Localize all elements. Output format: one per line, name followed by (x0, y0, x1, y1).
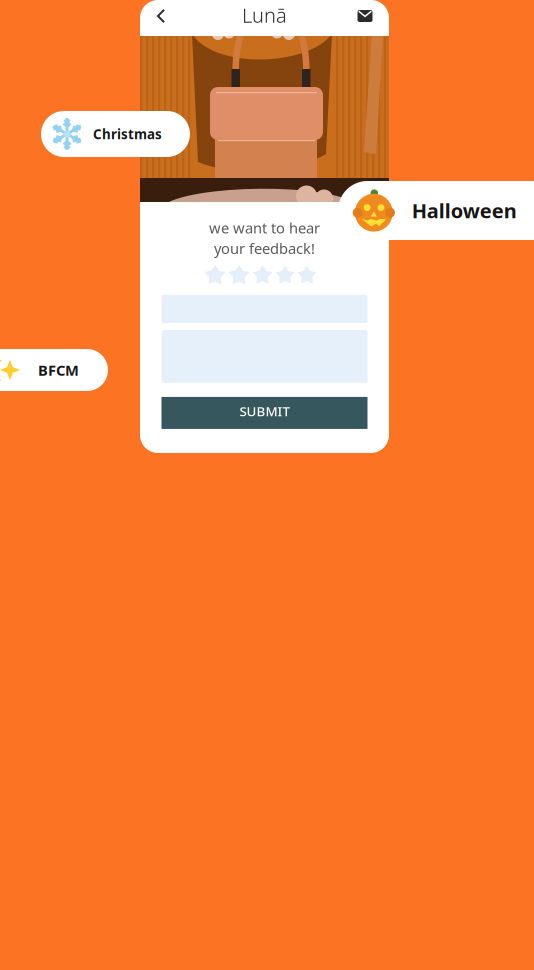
staticText: your feedback! (214, 238, 315, 258)
button[interactable]: BFCM (0, 349, 108, 391)
button[interactable]: SUBMIT (161, 397, 367, 429)
staticText: we want to hear (209, 218, 320, 237)
staticText: BFCM (38, 360, 79, 380)
staticText: Lunā (242, 2, 287, 28)
button[interactable]: Halloween (338, 181, 534, 240)
button[interactable]: Christmas (41, 111, 190, 157)
staticText: Halloween (412, 197, 517, 224)
button[interactable]: Back (144, 1, 178, 35)
staticText: Christmas (93, 125, 162, 143)
staticText: SUBMIT (239, 402, 289, 420)
button[interactable]: Messages (351, 1, 385, 35)
